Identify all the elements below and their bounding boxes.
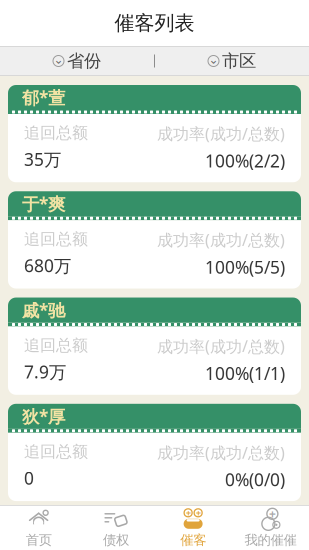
staticText: 0 xyxy=(24,466,34,489)
button[interactable]: 狄*厚 xyxy=(8,404,301,501)
staticText: 100%(2/2) xyxy=(205,149,285,172)
staticText: + xyxy=(269,506,276,522)
staticText: 成功率(成功/总数) xyxy=(157,335,285,357)
button[interactable]: 郁*萱 xyxy=(8,85,301,182)
button[interactable]: ⌄ xyxy=(43,45,111,77)
button[interactable]: + xyxy=(232,504,309,550)
button[interactable]: 龚*毅 xyxy=(8,510,301,550)
staticText: + xyxy=(186,507,191,519)
staticText: 于*爽 xyxy=(22,192,65,215)
staticText: 龚*毅 xyxy=(22,511,65,534)
staticText: 追回总额 xyxy=(24,442,88,461)
staticText: 成功率(成功/总数) xyxy=(157,442,285,463)
button[interactable]: 债权 xyxy=(77,504,154,550)
staticText: 市区 xyxy=(222,50,256,72)
staticText: 首页 xyxy=(26,532,52,548)
staticText: 7.9万 xyxy=(24,360,66,383)
staticText: 680万 xyxy=(24,254,71,277)
button[interactable]: ⌄ xyxy=(198,45,266,77)
staticText: ⌄ xyxy=(208,53,218,66)
staticText: 戚*驰 xyxy=(22,298,65,321)
staticText: 我的催催 xyxy=(244,532,296,548)
staticText: 0%(0/0) xyxy=(225,468,285,491)
staticText: 追回总额 xyxy=(24,123,88,143)
staticText: + xyxy=(196,507,201,519)
staticText: 100%(5/5) xyxy=(205,255,285,278)
staticText: 省份 xyxy=(67,50,101,72)
staticText: 35万 xyxy=(24,148,61,171)
button[interactable]: 戚*驰 xyxy=(8,297,301,395)
staticText: ⌄ xyxy=(53,53,63,66)
staticText: 成功率(成功/总数) xyxy=(157,229,285,250)
button[interactable]: 首页 xyxy=(0,504,77,550)
staticText: 追回总额 xyxy=(24,229,88,249)
staticText: 100%(1/1) xyxy=(205,362,285,385)
staticText: 狄*厚 xyxy=(22,405,65,428)
staticText: 债权 xyxy=(103,532,129,548)
staticText: 催客 xyxy=(180,532,206,548)
button[interactable]: + xyxy=(154,504,232,550)
staticText: 成功率(成功/总数) xyxy=(157,123,285,144)
staticText: 郁*萱 xyxy=(22,86,65,109)
staticText: 追回总额 xyxy=(24,335,88,355)
button[interactable]: 于*爽 xyxy=(8,191,301,289)
staticText: 催客列表 xyxy=(114,11,194,35)
